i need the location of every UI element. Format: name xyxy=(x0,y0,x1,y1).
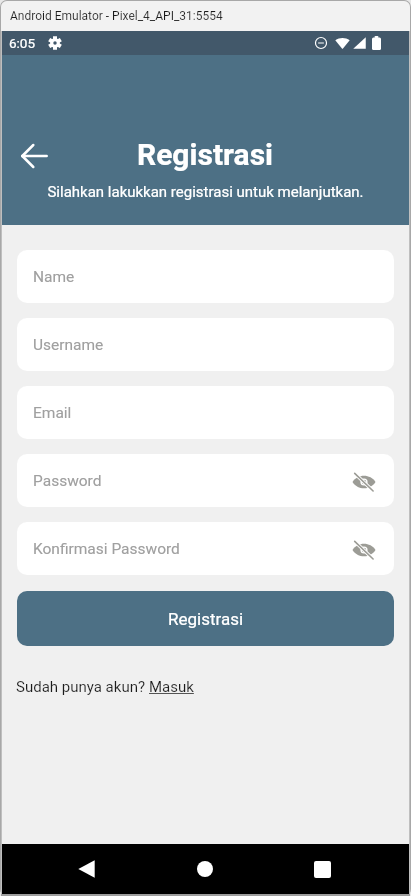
button[interactable]: Back xyxy=(60,844,112,894)
staticText: 6:05 xyxy=(9,35,36,51)
button[interactable]: Name xyxy=(17,250,394,303)
staticText: Android Emulator - Pixel_4_API_31:5554 xyxy=(10,9,223,23)
button[interactable]: Toggle password visibility xyxy=(349,467,379,497)
staticText: Sudah punya akun? xyxy=(16,678,149,696)
button[interactable]: Registrasi xyxy=(17,591,394,646)
staticText: Email xyxy=(33,404,72,422)
staticText: Konfirmasi Password xyxy=(33,540,180,558)
button[interactable]: Konfirmasi Password xyxy=(17,522,394,575)
button[interactable]: Password xyxy=(17,454,394,507)
staticText: Registrasi xyxy=(168,609,244,629)
button[interactable]: Home xyxy=(179,844,231,894)
staticText: Username xyxy=(33,336,104,354)
button[interactable]: Masuk xyxy=(149,678,194,696)
staticText: Registrasi xyxy=(137,137,274,172)
button[interactable]: Username xyxy=(17,318,394,371)
button[interactable]: Recent apps xyxy=(296,844,348,894)
button[interactable]: Back xyxy=(15,137,53,175)
staticText: Name xyxy=(33,268,75,286)
staticText: Password xyxy=(33,472,102,490)
staticText: Masuk xyxy=(149,678,194,696)
staticText: Silahkan lakukkan registrasi untuk melan… xyxy=(2,183,409,201)
button[interactable]: Email xyxy=(17,386,394,439)
button[interactable]: Toggle password visibility xyxy=(349,535,379,565)
